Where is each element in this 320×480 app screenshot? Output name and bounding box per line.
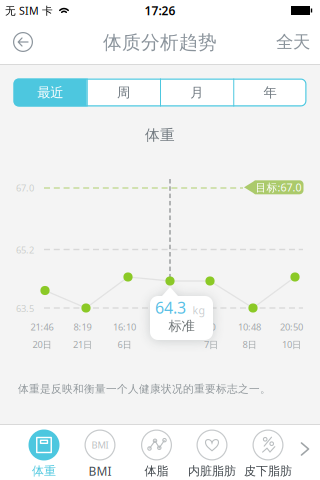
staticText: 10日 (282, 338, 301, 351)
button[interactable]: Back (3, 22, 43, 62)
staticText: 体脂 (144, 464, 168, 478)
staticText: 周 (117, 84, 130, 101)
staticText: 目标:67.0 (255, 180, 301, 194)
button[interactable]: More (296, 434, 314, 464)
staticText: 皮下脂肪 (244, 464, 292, 478)
staticText: 20日 (32, 338, 51, 351)
button[interactable]: 皮下脂肪 (240, 427, 296, 480)
staticText: 最近 (37, 84, 63, 101)
staticText: 65.2 (16, 244, 34, 256)
staticText: 年 (263, 84, 276, 101)
button[interactable]: 内脏脂肪 (184, 427, 240, 480)
staticText: 体重是反映和衡量一个人健康状况的重要标志之一。 (18, 382, 271, 395)
staticText: 全天 (276, 31, 310, 53)
staticText: 8日 (242, 338, 256, 351)
staticText: 16:10 (113, 321, 136, 333)
button[interactable]: 全天 (268, 22, 318, 62)
staticText: 20:50 (280, 321, 303, 333)
staticText: 64.3 (155, 297, 186, 318)
staticText: 17:26 (144, 2, 175, 18)
staticText: 8:19 (73, 321, 91, 333)
button[interactable]: 周 (87, 78, 160, 106)
staticText: 63.5 (16, 302, 34, 315)
staticText: BMI (91, 439, 108, 451)
staticText: 体重 (145, 126, 175, 144)
button[interactable]: 体脂 (128, 427, 184, 480)
staticText: 体重 (32, 464, 56, 478)
staticText: 体质分析趋势 (103, 31, 217, 54)
staticText: 月 (190, 84, 203, 101)
staticText: 内脏脂肪 (188, 464, 236, 478)
button[interactable]: 年 (233, 78, 306, 106)
staticText: 21日 (73, 338, 92, 351)
button[interactable]: 体重 (16, 427, 72, 480)
button[interactable]: 月 (160, 78, 233, 106)
staticText: 无 SIM 卡 (5, 3, 53, 18)
button[interactable]: BMI (72, 427, 128, 480)
staticText: kg (192, 303, 205, 317)
staticText: 6日 (117, 338, 131, 351)
staticText: 21:46 (30, 321, 53, 333)
staticText: 10:48 (238, 321, 261, 333)
staticText: 67.0 (16, 182, 34, 194)
staticText: 23:40 (192, 321, 215, 333)
staticText: 7日 (204, 338, 218, 351)
button[interactable]: 最近 (13, 78, 87, 106)
staticText: BMI (88, 463, 111, 479)
staticText: 标准 (168, 318, 194, 334)
